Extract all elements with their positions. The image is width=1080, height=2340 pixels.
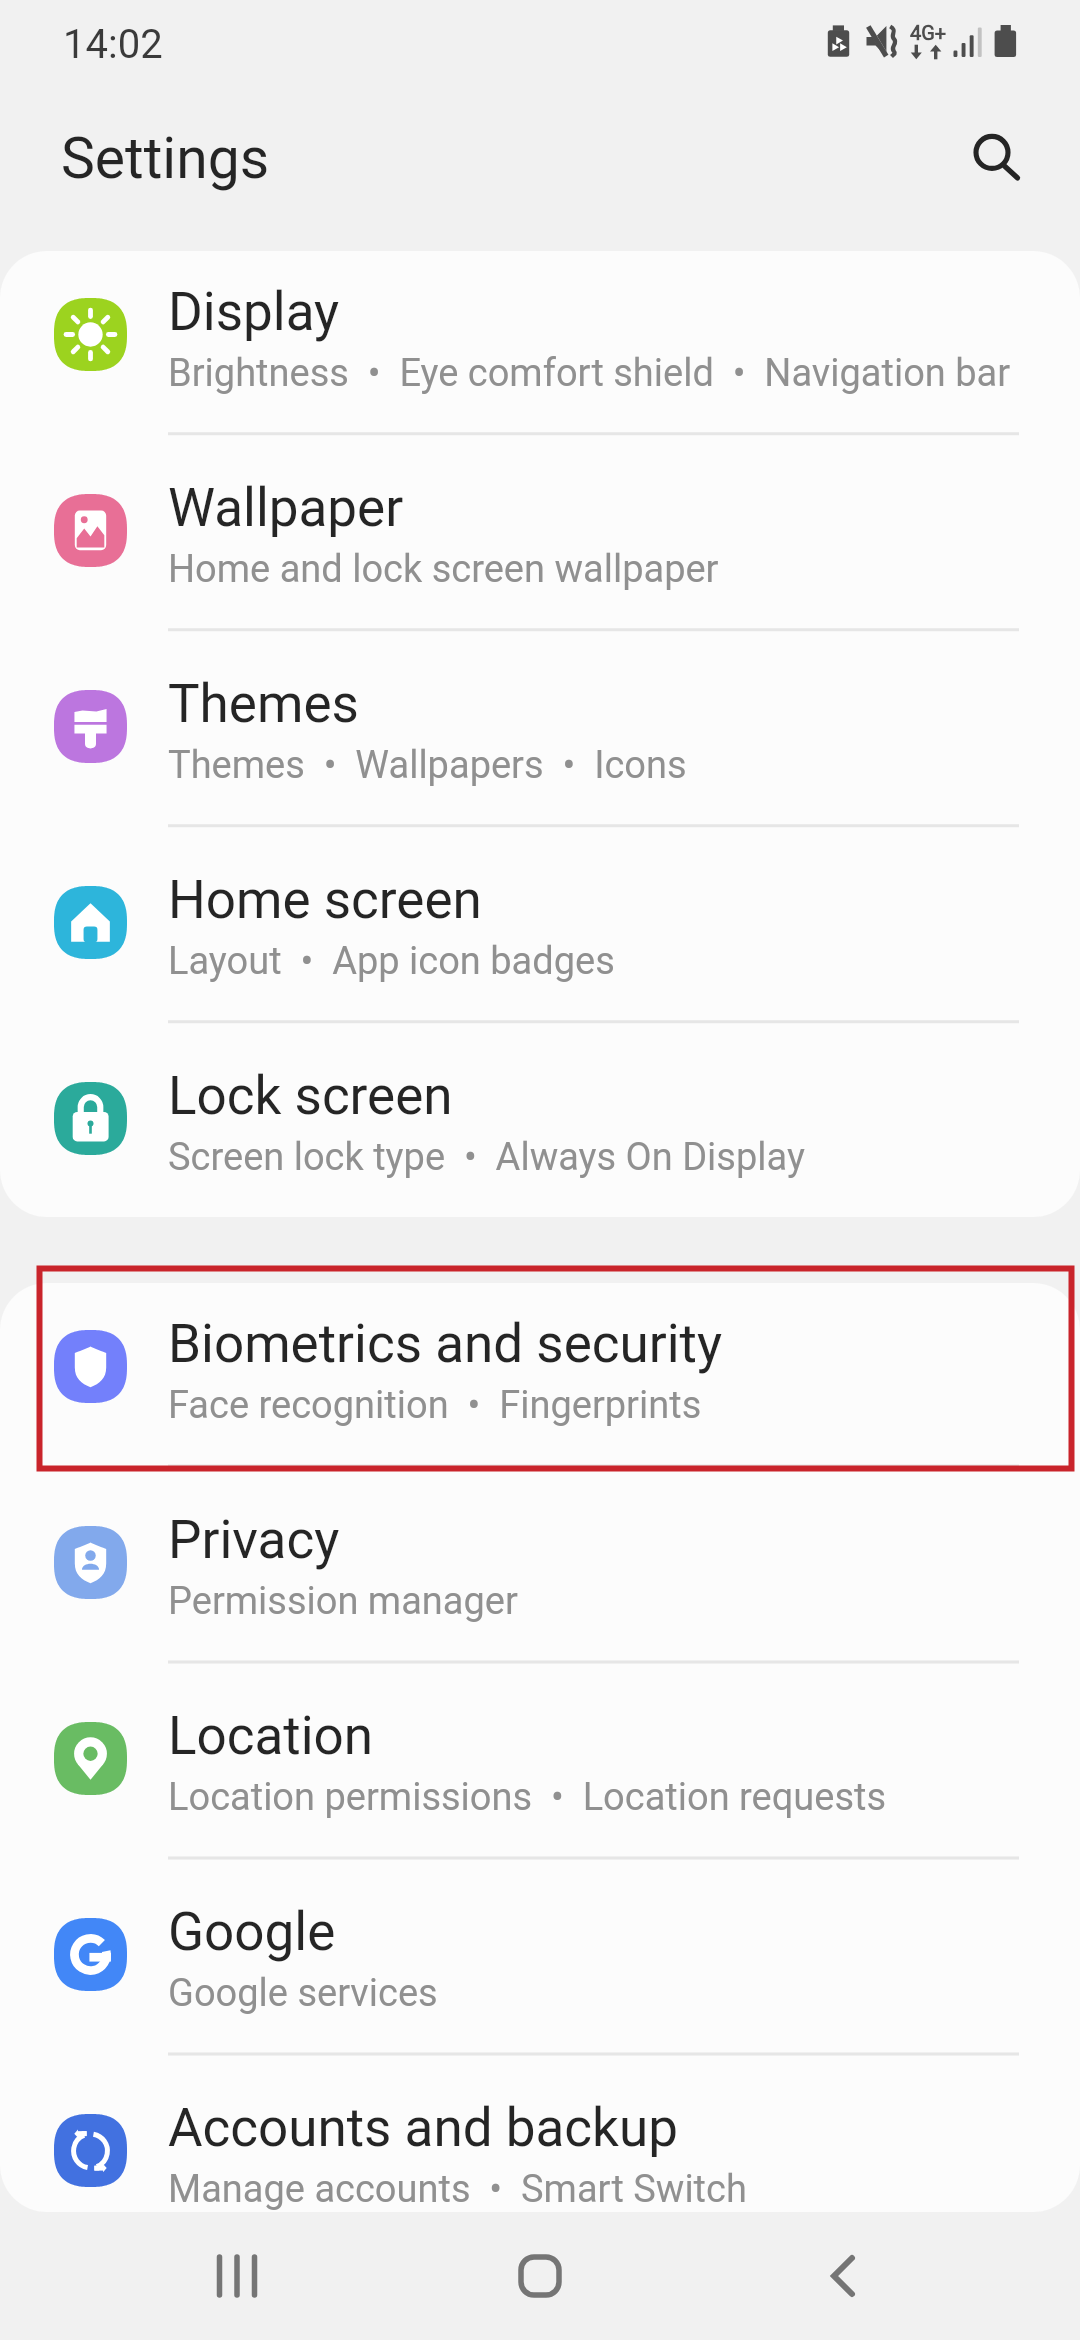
- staticText: Face recognition • Fingerprints: [168, 1383, 702, 1428]
- button[interactable]: Home screen: [0, 841, 1080, 1037]
- staticText: Wallpaper: [168, 477, 404, 539]
- staticText: Location: [168, 1705, 374, 1767]
- button[interactable]: Wallpaper: [0, 449, 1080, 645]
- button[interactable]: Lock screen: [0, 1037, 1080, 1217]
- button[interactable]: Themes: [0, 645, 1080, 841]
- staticText: Screen lock type • Always On Display: [168, 1135, 805, 1180]
- staticText: Google services: [168, 1971, 438, 2016]
- staticText: Home and lock screen wallpaper: [168, 547, 719, 592]
- staticText: Themes • Wallpapers • Icons: [168, 743, 687, 788]
- staticText: 4G+: [910, 21, 947, 44]
- staticText: Google: [168, 1901, 336, 1963]
- button[interactable]: Accounts and backup: [0, 2069, 1080, 2212]
- staticText: Privacy: [168, 1509, 340, 1571]
- staticText: Accounts and backup: [168, 2097, 678, 2159]
- button[interactable]: Google: [0, 1873, 1080, 2069]
- staticText: Settings: [61, 125, 270, 192]
- staticText: Permission manager: [168, 1579, 518, 1624]
- staticText: Brightness • Eye comfort shield • Naviga…: [168, 351, 1011, 396]
- button[interactable]: Biometrics and security: [0, 1285, 1080, 1481]
- button[interactable]: Recent apps: [147, 2212, 327, 2340]
- staticText: Home screen: [168, 869, 482, 931]
- staticText: 14:02: [63, 21, 163, 68]
- button[interactable]: Home: [450, 2212, 630, 2340]
- staticText: Layout • App icon badges: [168, 939, 615, 984]
- staticText: Biometrics and security: [168, 1313, 722, 1375]
- button[interactable]: Display: [0, 253, 1080, 449]
- button[interactable]: Privacy: [0, 1481, 1080, 1677]
- button[interactable]: Back: [753, 2212, 933, 2340]
- button[interactable]: Search: [936, 96, 1056, 216]
- staticText: Manage accounts • Smart Switch: [168, 2167, 747, 2212]
- staticText: Themes: [168, 673, 359, 735]
- staticText: Location permissions • Location requests: [168, 1775, 887, 1820]
- button[interactable]: Location: [0, 1677, 1080, 1873]
- staticText: Lock screen: [168, 1065, 453, 1127]
- staticText: Display: [168, 281, 340, 343]
